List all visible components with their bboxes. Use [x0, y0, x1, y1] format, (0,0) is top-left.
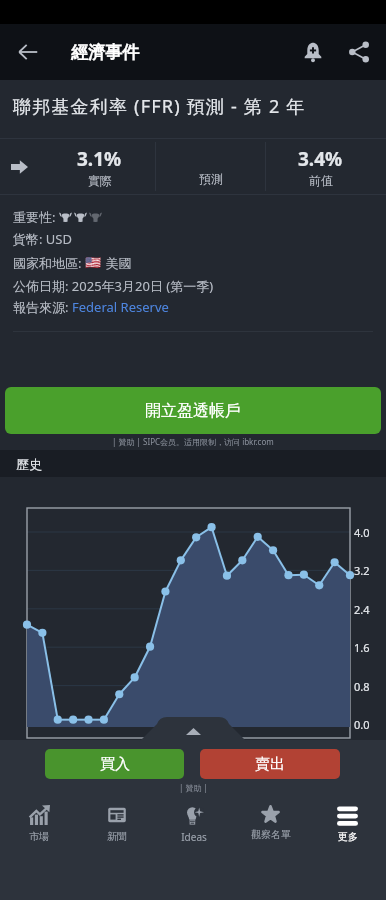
- staticText: | 贊助 | SIPC会员。适用限制，访问 ibkr.com: [112, 436, 274, 447]
- button[interactable]: 開立盈透帳戶: [5, 387, 381, 434]
- staticText: 觀察名單: [251, 828, 291, 841]
- staticText: 4.0: [354, 525, 370, 540]
- button[interactable]: Expand: [130, 717, 256, 742]
- staticText: 經濟事件: [71, 42, 139, 63]
- button[interactable]: Ideas: [155, 798, 232, 854]
- staticText: 重要性:: [13, 208, 59, 226]
- staticText: 更多: [338, 830, 358, 843]
- staticText: 開立盈透帳戶: [145, 401, 241, 421]
- staticText: 3.4%: [298, 146, 343, 172]
- button[interactable]: 買入: [45, 749, 184, 779]
- staticText: 買入: [100, 755, 130, 774]
- button[interactable]: 新聞: [78, 798, 155, 854]
- staticText: 1.6: [354, 640, 370, 655]
- staticText: 3.1%: [77, 146, 122, 172]
- staticText: 貨幣: USD: [13, 230, 72, 248]
- staticText: 歷史: [16, 456, 42, 472]
- staticText: 2.4: [354, 602, 370, 617]
- staticText: 賣出: [255, 755, 285, 774]
- staticText: 國家和地區:: [13, 254, 85, 272]
- staticText: 3.2: [354, 563, 370, 578]
- button[interactable]: 賣出: [200, 749, 340, 779]
- staticText: 預測: [199, 171, 223, 186]
- button[interactable]: Back: [8, 32, 48, 72]
- staticText: 前值: [309, 173, 333, 188]
- button[interactable]: Add alert: [293, 32, 333, 72]
- staticText: 新聞: [107, 830, 127, 843]
- staticText: 0.0: [354, 717, 370, 732]
- staticText: 聯邦基金利率 (FFR) 預測 - 第 2 年: [13, 94, 306, 119]
- staticText: 🇺🇸: [85, 255, 102, 270]
- staticText: 0.8: [354, 679, 370, 694]
- staticText: 公佈日期: 2025年3月20日 (第一季): [13, 277, 214, 295]
- staticText: 美國: [102, 254, 132, 272]
- button[interactable]: Federal Reserve: [72, 298, 169, 316]
- button[interactable]: 觀察名單: [232, 798, 309, 854]
- staticText: 報告來源:: [13, 298, 72, 316]
- staticText: 實際: [88, 173, 112, 188]
- staticText: 市場: [29, 830, 49, 843]
- button[interactable]: 市場: [0, 798, 78, 854]
- button[interactable]: 更多: [309, 798, 386, 854]
- button[interactable]: Share: [339, 32, 379, 72]
- staticText: Ideas: [181, 830, 207, 844]
- staticText: | 贊助 |: [179, 782, 208, 793]
